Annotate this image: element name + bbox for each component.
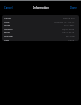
staticText: Type — [4, 20, 10, 23]
staticText: Pixel 8 Pro — [63, 16, 75, 19]
staticText: TQ3A.2309 — [62, 27, 75, 30]
button[interactable]: Version — [2, 26, 79, 30]
staticText: Done — [70, 6, 77, 10]
button[interactable]: Tags — [2, 37, 79, 41]
staticText: Serial — [4, 23, 11, 26]
staticText: Name — [4, 16, 11, 19]
staticText: Tags — [4, 38, 10, 41]
staticText: 86.4 GB — [66, 34, 75, 37]
button[interactable]: Name — [2, 15, 79, 19]
staticText: Storage — [4, 34, 13, 37]
staticText: Cancel — [4, 6, 13, 10]
staticText: Information — [33, 6, 49, 10]
staticText: UP1A.2310 — [62, 30, 75, 33]
button[interactable]: Storage — [2, 33, 79, 37]
staticText: 2A11FDH — [64, 23, 75, 26]
staticText: Android 14 · UP1A — [54, 20, 75, 23]
button[interactable]: Serial — [2, 22, 79, 26]
button[interactable]: Cancel — [4, 6, 13, 10]
staticText: None — [68, 38, 75, 41]
staticText: Version — [4, 27, 13, 30]
button[interactable]: Done — [70, 6, 77, 10]
button[interactable]: Build — [2, 29, 79, 33]
button[interactable]: Type — [2, 19, 79, 23]
staticText: Build — [4, 30, 10, 33]
